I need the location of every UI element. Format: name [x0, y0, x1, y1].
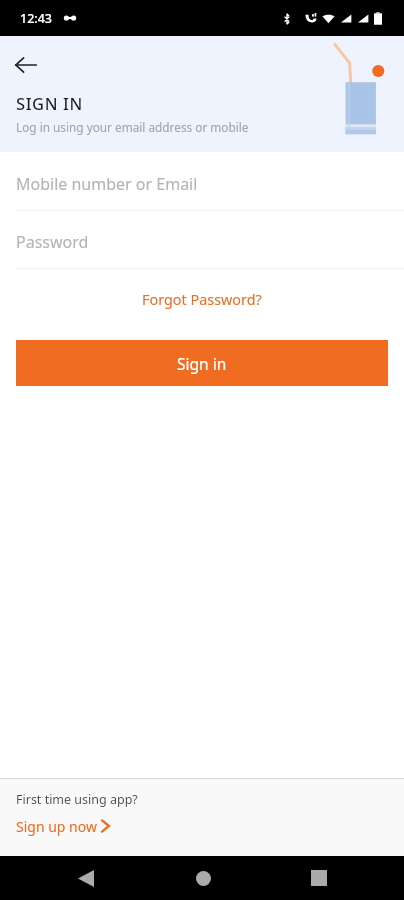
- button[interactable]: Mobile number or Email: [0, 171, 404, 211]
- button[interactable]: Password: [0, 229, 404, 269]
- staticText: Password: [16, 231, 89, 253]
- button[interactable]: Back: [63, 856, 109, 900]
- button[interactable]: Home: [180, 856, 226, 900]
- button[interactable]: Forgot Password?: [132, 286, 272, 314]
- staticText: 12:43: [20, 10, 53, 27]
- button[interactable]: Sign up now: [0, 816, 110, 836]
- button[interactable]: Back: [5, 44, 46, 85]
- staticText: Sign in: [177, 353, 227, 374]
- staticText: SIGN IN: [16, 92, 83, 114]
- staticText: Mobile number or Email: [16, 173, 198, 195]
- staticText: First time using app?: [16, 791, 138, 808]
- button[interactable]: Recents: [296, 856, 342, 900]
- staticText: Forgot Password?: [142, 290, 262, 310]
- staticText: Sign up now: [16, 817, 97, 836]
- button[interactable]: Sign in: [16, 340, 388, 386]
- staticText: Log in using your email address or mobil…: [16, 119, 249, 135]
